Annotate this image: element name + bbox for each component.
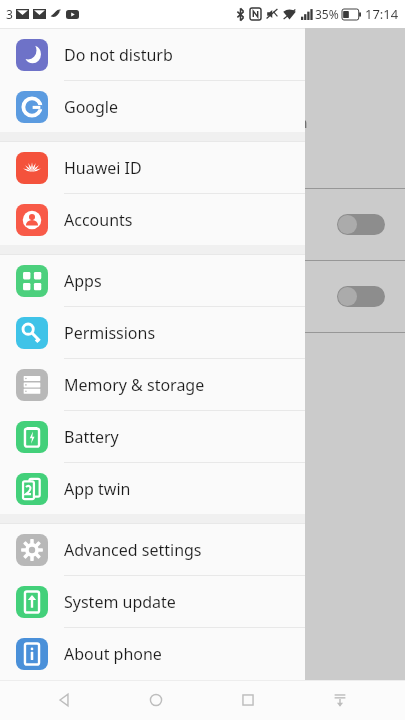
staticText: 17:14 xyxy=(365,5,399,23)
button[interactable]: Google xyxy=(0,81,305,132)
button[interactable]: Hide navigation bar xyxy=(318,680,362,720)
staticText: About phone xyxy=(64,643,162,665)
staticText: Accounts xyxy=(64,209,133,231)
button[interactable]: Recents xyxy=(226,680,270,720)
button[interactable]: Do not disturb xyxy=(0,29,305,80)
staticText: accounts for the same app at one time. T… xyxy=(16,113,308,132)
staticText: App twin xyxy=(64,478,131,500)
button[interactable] xyxy=(0,261,405,332)
staticText: Apps xyxy=(64,270,102,292)
button[interactable]: Apps xyxy=(0,255,305,306)
staticText: apps can be managed separately. This xyxy=(16,136,267,155)
staticText: Permissions xyxy=(64,322,156,344)
button[interactable]: Memory & storage xyxy=(0,359,305,410)
button[interactable]: Accounts xyxy=(0,194,305,245)
button[interactable]: Battery xyxy=(0,411,305,462)
button[interactable]: Huawei ID xyxy=(0,142,305,193)
staticText: feature is supported by the home screens xyxy=(16,159,290,178)
button[interactable]: App twin xyxy=(0,463,305,514)
staticText: Huawei ID xyxy=(64,157,142,179)
staticText: Battery xyxy=(64,426,119,448)
staticText: Do not disturb xyxy=(64,44,173,66)
staticText: 3 xyxy=(6,6,13,22)
button[interactable]: About phone xyxy=(0,628,305,679)
button[interactable]: Permissions xyxy=(0,307,305,358)
button[interactable] xyxy=(0,189,405,260)
staticText: Advanced settings xyxy=(64,539,202,561)
button[interactable]: System update xyxy=(0,576,305,627)
button[interactable]: Advanced settings xyxy=(0,524,305,575)
button[interactable]: Back xyxy=(42,680,86,720)
staticText: Memory & storage xyxy=(64,374,205,396)
button[interactable]: Home xyxy=(134,680,178,720)
staticText: Google xyxy=(64,96,119,118)
staticText: System update xyxy=(64,591,176,613)
staticText: 35% xyxy=(315,6,339,22)
staticText: App twin lets you sign in to two differe… xyxy=(16,90,282,109)
